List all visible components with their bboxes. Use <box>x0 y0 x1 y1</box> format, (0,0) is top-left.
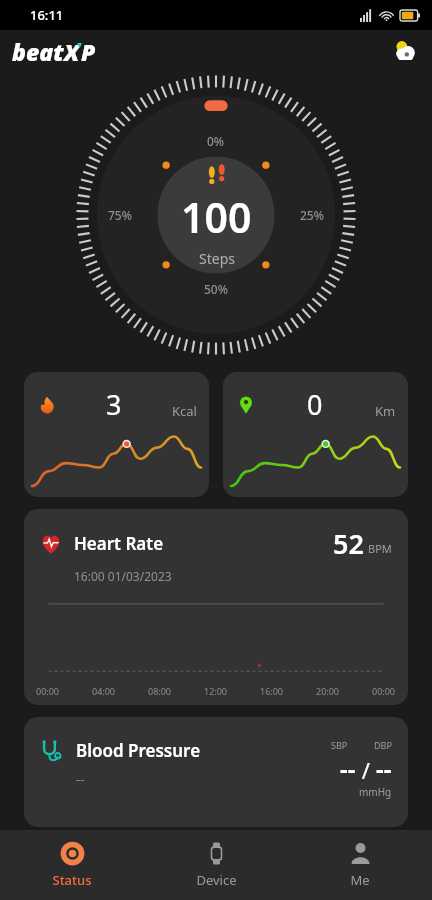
staticText: 16:00 <box>260 685 284 697</box>
staticText: Me <box>350 871 370 889</box>
staticText: -- <box>340 752 356 785</box>
staticText: 100 <box>181 189 252 245</box>
staticText: Device <box>196 871 237 889</box>
button[interactable]: Device <box>144 841 288 889</box>
staticText: 12:00 <box>204 685 228 697</box>
staticText: mmHg <box>359 785 392 799</box>
staticText: SBP <box>331 739 348 751</box>
staticText: 08:00 <box>148 685 172 697</box>
staticText: Kcal <box>172 402 197 420</box>
button[interactable]: Weather <box>392 38 418 64</box>
button[interactable]: Heart Rate 52 BPM <box>24 509 408 705</box>
staticText: Km <box>375 402 396 420</box>
staticText: 00:00 <box>372 685 396 697</box>
staticText: Blood Pressure <box>76 739 201 762</box>
staticText: DBP <box>374 739 392 751</box>
staticText: 04:00 <box>92 685 116 697</box>
staticText: P <box>81 36 96 67</box>
staticText: 3 <box>106 386 122 423</box>
staticText: 52 <box>333 525 364 562</box>
button[interactable]: Calories 3 Kcal <box>24 372 209 497</box>
staticText: beat <box>12 36 64 67</box>
staticText: 16:11 <box>30 6 64 24</box>
staticText: / <box>356 755 376 785</box>
staticText: Steps <box>199 249 235 268</box>
staticText: 20:00 <box>316 685 340 697</box>
button[interactable]: Blood Pressure <box>24 717 408 827</box>
staticText: Status <box>52 871 92 889</box>
staticText: BPM <box>368 541 392 556</box>
staticText: -- <box>376 752 392 785</box>
staticText: 50% <box>204 281 228 297</box>
staticText: 00:00 <box>36 685 60 697</box>
staticText: 16:00 01/03/2023 <box>74 568 172 584</box>
staticText: Heart Rate <box>74 532 164 555</box>
staticText: 0% <box>207 133 225 149</box>
staticText: X <box>64 36 80 67</box>
button[interactable]: Status <box>0 841 144 889</box>
staticText: 0 <box>307 386 323 423</box>
button[interactable]: Me <box>288 841 432 889</box>
staticText: 75% <box>108 207 132 223</box>
button[interactable]: Distance 0 Km <box>223 372 408 497</box>
staticText: -- <box>76 770 85 788</box>
staticText: 25% <box>300 207 324 223</box>
button[interactable]: Steps 100 <box>75 74 357 356</box>
